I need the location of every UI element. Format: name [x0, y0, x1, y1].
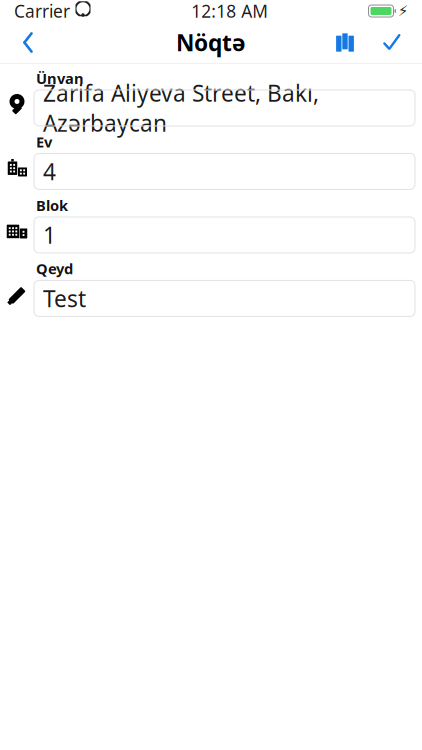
staticText: Nöqtə	[176, 27, 246, 57]
button[interactable]: Back	[6, 22, 50, 62]
staticText: Carrier	[14, 0, 70, 22]
staticText: Qeyd	[36, 259, 73, 278]
staticText: ⚡︎	[398, 3, 408, 19]
staticText: Ünvan	[36, 68, 84, 88]
button[interactable]: Map	[322, 22, 368, 62]
button[interactable]: Done	[368, 22, 416, 62]
staticText: 1	[43, 220, 56, 250]
staticText: 4	[43, 156, 56, 186]
staticText: Ev	[36, 132, 52, 151]
staticText: Blok	[36, 195, 68, 215]
staticText: Test	[43, 283, 86, 313]
staticText: 12:18 AM	[191, 0, 268, 22]
staticText: Zarifa Aliyeva Street, Bakı, Azərbaycan	[43, 78, 319, 138]
